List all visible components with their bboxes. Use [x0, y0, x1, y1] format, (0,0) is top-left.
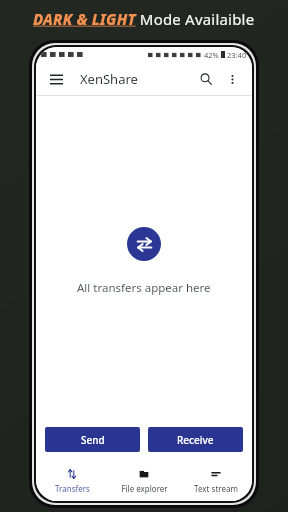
button[interactable]: More options [222, 69, 242, 89]
staticText: Receive [177, 433, 214, 447]
staticText: 23:40 [227, 50, 247, 60]
staticText: Send [81, 433, 105, 447]
staticText: Transfers [55, 483, 90, 494]
button[interactable]: Send [45, 427, 140, 452]
staticText: All transfers appear here [77, 280, 211, 296]
button[interactable]: Search [196, 69, 216, 89]
button[interactable]: Receive [148, 427, 243, 452]
staticText: Text stream [194, 483, 238, 494]
staticText: File explorer [121, 483, 168, 494]
button[interactable]: Transfers [36, 461, 108, 501]
staticText: DARK & LIGHT Mode Availaible [33, 9, 255, 29]
other: Transfer [127, 227, 161, 261]
button[interactable]: Menu [46, 69, 66, 89]
button[interactable]: File explorer [108, 461, 180, 501]
staticText: XenShare [80, 70, 138, 88]
button[interactable]: Text stream [180, 461, 252, 501]
staticText: 42% [204, 50, 219, 60]
